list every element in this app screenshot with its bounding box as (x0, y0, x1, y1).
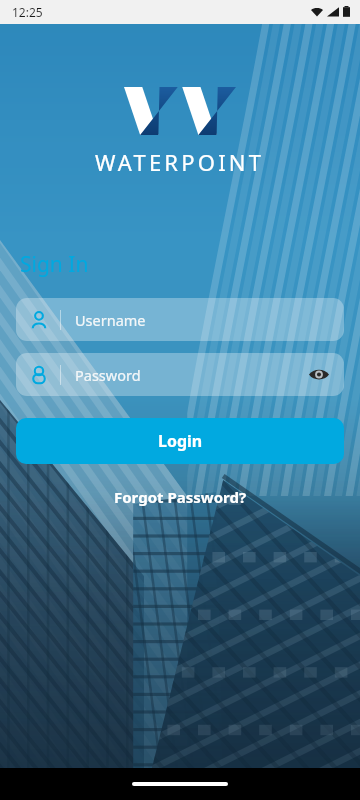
staticText: Sign In (20, 250, 89, 279)
staticText: Username (75, 310, 344, 330)
staticText: Password (75, 365, 302, 385)
staticText: Login (158, 430, 203, 452)
button[interactable]: Password (16, 353, 344, 396)
button[interactable]: Username (16, 298, 344, 341)
button[interactable]: Show password (302, 361, 336, 388)
staticText: 12:25 (12, 4, 43, 20)
button[interactable]: Login (16, 418, 344, 464)
button[interactable]: Forgot Password? (106, 484, 255, 510)
staticText: WATERPOINT (95, 147, 265, 177)
staticText: Forgot Password? (114, 487, 247, 507)
